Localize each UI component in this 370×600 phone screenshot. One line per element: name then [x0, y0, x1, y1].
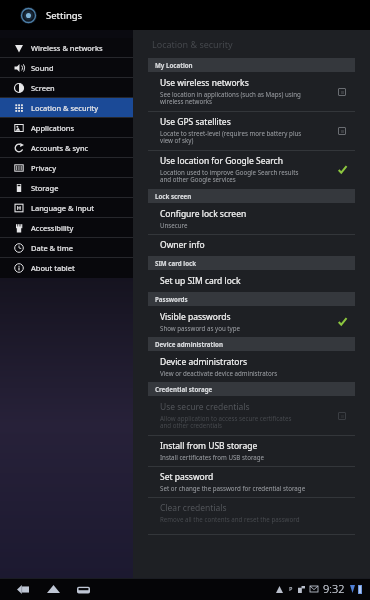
button[interactable]: Wireless & networks [0, 38, 133, 58]
staticText: Remove all the contents and reset the pa… [160, 515, 300, 523]
staticText: Accounts & sync [31, 143, 89, 153]
staticText: Storage [31, 183, 59, 193]
staticText: Visible passwords [160, 311, 231, 323]
button[interactable]: Set password [133, 466, 370, 497]
staticText: Device administration [155, 340, 223, 348]
staticText: Use wireless networks [160, 77, 249, 89]
button[interactable]: Recent apps [72, 580, 94, 598]
button[interactable]: Privacy [0, 158, 133, 178]
staticText: Applications [31, 123, 75, 133]
staticText: Allow application to access secure certi… [160, 414, 292, 430]
staticText: Use location for Google Search [160, 155, 283, 167]
staticText: Install from USB storage [160, 440, 258, 452]
staticText: Show password as you type [160, 324, 241, 332]
staticText: Clear credentials [160, 502, 227, 514]
button[interactable]: Accessibility [0, 218, 133, 238]
staticText: Owner info [160, 239, 205, 251]
button[interactable]: Sound [0, 58, 133, 78]
staticText: View or deactivate device administrators [160, 369, 278, 377]
staticText: Lock screen [155, 192, 192, 200]
staticText: Sound [31, 63, 54, 73]
button[interactable]: Location & security [0, 98, 133, 118]
staticText: Unsecure [160, 221, 188, 229]
staticText: Location & security [152, 38, 233, 50]
staticText: Use GPS satellites [160, 116, 231, 128]
button[interactable]: Language & input [0, 198, 133, 218]
staticText: Set or change the password for credentia… [160, 484, 306, 492]
button[interactable]: Owner info [133, 234, 370, 256]
staticText: Screen [31, 83, 55, 93]
staticText: About tablet [31, 263, 75, 273]
button[interactable]: Use location for Google Search [133, 150, 370, 189]
staticText: Passwords [155, 295, 188, 303]
staticText: 9:32 [323, 581, 345, 596]
staticText: Set password [160, 471, 214, 483]
staticText: Wireless & networks [31, 43, 103, 53]
button[interactable]: Visible passwords [133, 306, 370, 337]
staticText: Settings [46, 9, 83, 22]
button[interactable]: Configure lock screen [133, 203, 370, 234]
staticText: ᴘ [289, 584, 293, 594]
staticText: My Location [155, 61, 193, 69]
button[interactable]: About tablet [0, 258, 133, 278]
staticText: Language & input [31, 203, 94, 213]
staticText: Location used to improve Google Search r… [160, 168, 299, 184]
staticText: Device administrators [160, 356, 248, 368]
button[interactable]: Back [12, 580, 34, 598]
staticText: Install certificates from USB storage [160, 453, 265, 461]
button[interactable]: Home [42, 580, 64, 598]
button[interactable]: Storage [0, 178, 133, 198]
staticText: Privacy [31, 163, 57, 173]
button[interactable]: Applications [0, 118, 133, 138]
staticText: See location in applications (such as Ma… [160, 90, 301, 106]
button[interactable]: Use wireless networks [133, 72, 370, 111]
button[interactable]: Use secure credentials [133, 396, 370, 435]
staticText: SIM card lock [155, 259, 197, 267]
staticText: Date & time [31, 243, 73, 253]
button[interactable]: Accounts & sync [0, 138, 133, 158]
staticText: Set up SIM card lock [160, 275, 241, 287]
button[interactable]: Clear credentials [133, 497, 370, 528]
staticText: Credential storage [155, 385, 213, 393]
staticText: Location & security [31, 103, 99, 113]
staticText: Accessibility [31, 223, 74, 233]
button[interactable]: Date & time [0, 238, 133, 258]
staticText: Configure lock screen [160, 208, 247, 220]
staticText: Use secure credentials [160, 401, 250, 413]
button[interactable]: Install from USB storage [133, 435, 370, 466]
button[interactable]: Screen [0, 78, 133, 98]
button[interactable]: Set up SIM card lock [133, 270, 370, 292]
staticText: Locate to street-level (requires more ba… [160, 129, 302, 145]
button[interactable]: Device administrators [133, 351, 370, 382]
button[interactable]: Use GPS satellites [133, 111, 370, 150]
